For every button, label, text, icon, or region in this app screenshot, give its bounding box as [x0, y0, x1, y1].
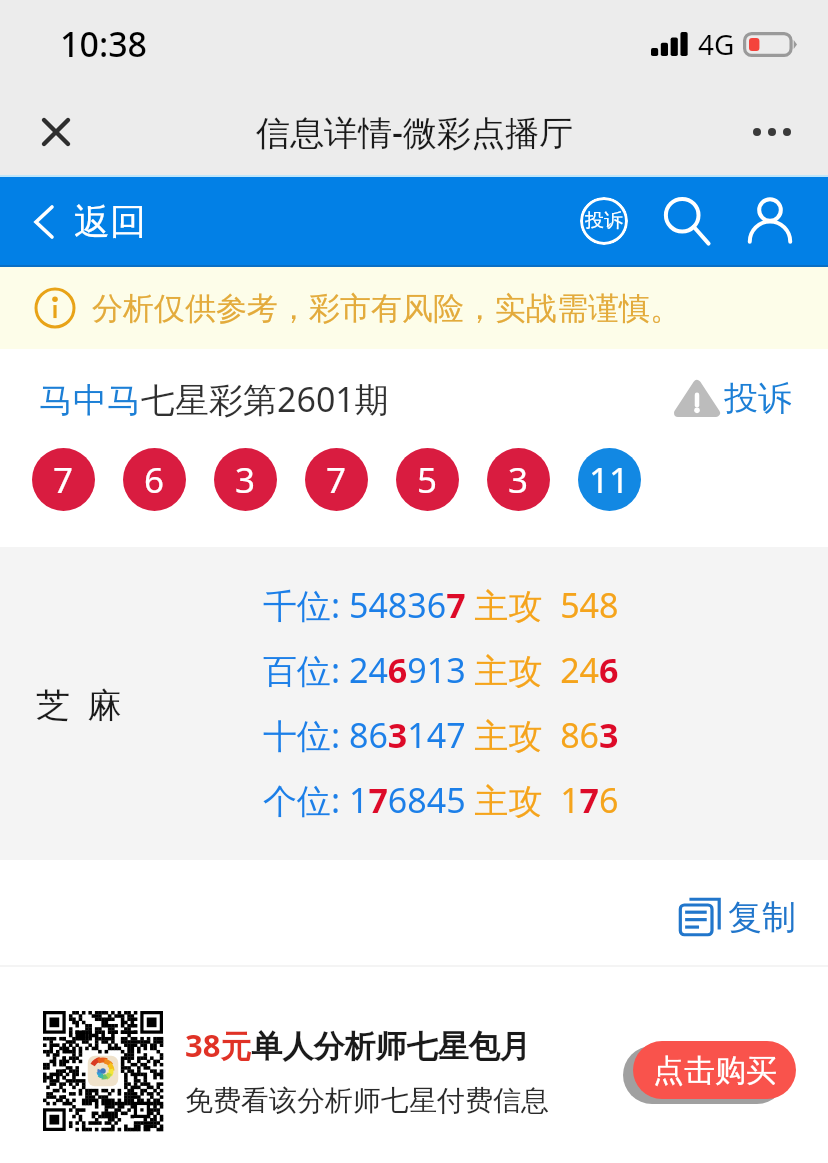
button[interactable]: 复制 [676, 893, 796, 941]
staticText: 11 [589, 456, 630, 504]
staticText: 6 [144, 456, 165, 504]
button[interactable]: Close [26, 102, 86, 162]
staticText: 3 [235, 456, 256, 504]
staticText: 免费看该分析师七星付费信息 [185, 1083, 549, 1118]
staticText: 10:38 [60, 21, 148, 67]
staticText: 十位: 863147 主攻 863 [263, 712, 619, 758]
button[interactable]: 点击购买 [633, 1041, 796, 1099]
staticText: 信息详情-微彩点播厅 [256, 109, 573, 155]
staticText: 点击购买 [653, 1051, 777, 1090]
staticText: 个位: 176845 主攻 176 [263, 777, 619, 823]
staticText: 4G [698, 25, 735, 63]
staticText: 返回 [74, 199, 146, 244]
staticText: 7 [53, 456, 74, 504]
staticText: 3 [508, 456, 529, 504]
staticText: 分析仅供参考，彩市有风险，实战需谨慎。 [92, 289, 681, 328]
staticText: 7 [326, 456, 347, 504]
button[interactable]: 投诉 [563, 190, 645, 252]
staticText: 千位: 548367 主攻 548 [263, 582, 619, 628]
button[interactable]: 返回 [30, 199, 146, 244]
button[interactable]: Search [646, 190, 728, 252]
staticText: 投诉 [585, 209, 623, 233]
staticText: 38元单人分析师七星包月 [185, 1024, 531, 1066]
staticText: 百位: 246913 主攻 246 [263, 647, 619, 693]
button[interactable]: Profile [729, 190, 811, 252]
button[interactable]: 投诉 [674, 377, 792, 420]
staticText: 5 [417, 456, 438, 504]
staticText: 复制 [728, 896, 796, 939]
staticText: 马中马七星彩第2601期 [39, 376, 389, 422]
staticText: 芝 麻 [36, 681, 122, 727]
button[interactable]: More options [742, 102, 802, 162]
staticText: 投诉 [724, 377, 792, 420]
